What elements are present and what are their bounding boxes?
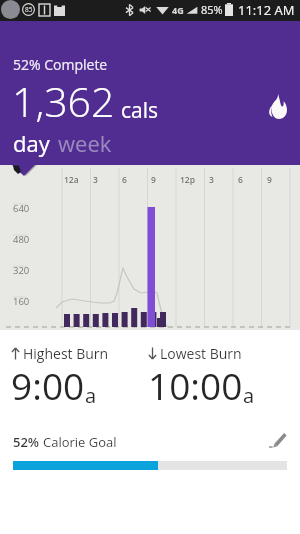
button[interactable]: day [11,128,52,158]
staticText: 640 [13,202,30,215]
staticText: 10:00 [148,360,243,410]
staticText: 3 [209,174,214,186]
button[interactable]: Calories burned [266,94,288,119]
staticText: week [58,128,112,158]
staticText: 12p [180,174,196,186]
button[interactable]: 52% [13,433,117,451]
staticText: 12a [64,174,79,186]
staticText: Calorie Goal [43,433,117,451]
staticText: Lowest Burn [160,344,242,363]
staticText: day [13,128,50,158]
staticText: 9 [151,174,156,186]
staticText: 85% [201,2,223,17]
staticText: 9:00 [11,360,85,410]
staticText: 160 [13,295,30,308]
staticText: a [85,382,97,409]
staticText: 480 [13,233,30,246]
staticText: 85 [25,5,33,14]
staticText: 6 [122,174,127,186]
staticText: 9 [267,174,272,186]
button[interactable]: Lowest Burn [148,344,300,413]
button[interactable]: Edit calorie goal [269,433,287,451]
staticText: 52% Complete [13,55,108,74]
button[interactable]: Highest Burn [11,344,148,413]
staticText: 52% [13,433,40,451]
staticText: 6 [238,174,243,186]
staticText: Highest Burn [23,344,109,363]
staticText: 4G [172,4,184,16]
staticText: 11:12 AM [238,1,295,19]
staticText: 320 [13,264,30,277]
staticText: cals [121,96,159,125]
staticText: 3 [93,174,98,186]
staticText: a [243,382,255,409]
button[interactable]: week [56,128,114,158]
staticText: 1,362 [12,73,115,129]
